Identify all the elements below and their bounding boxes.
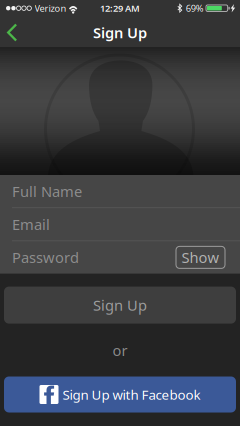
button[interactable]: Sign Up xyxy=(4,287,236,324)
staticText: Verizon xyxy=(35,2,67,14)
staticText: Full Name xyxy=(12,181,82,201)
staticText: Show xyxy=(181,248,219,267)
staticText: 69% xyxy=(186,2,204,14)
button[interactable]: Sign Up with Facebook xyxy=(4,376,236,412)
staticText: Sign Up xyxy=(93,23,147,42)
staticText: Sign Up xyxy=(93,295,147,315)
staticText: Email xyxy=(12,215,50,234)
staticText: Sign Up with Facebook xyxy=(62,386,200,403)
button[interactable]: Show xyxy=(176,246,225,268)
staticText: 12:29 AM xyxy=(100,2,140,14)
staticText: Password xyxy=(12,248,79,267)
staticText: or xyxy=(112,341,127,360)
button[interactable]: Back xyxy=(0,20,28,47)
